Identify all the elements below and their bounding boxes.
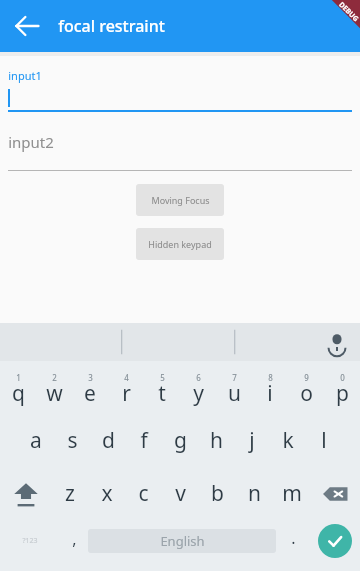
- button[interactable]: Shift: [0, 467, 51, 520]
- staticText: input1: [8, 68, 42, 83]
- staticText: u: [228, 379, 241, 408]
- button[interactable]: z: [51, 467, 88, 520]
- button[interactable]: 9: [288, 366, 324, 414]
- button[interactable]: b: [199, 467, 236, 520]
- button[interactable]: 3: [72, 366, 108, 414]
- staticText: p: [336, 379, 349, 408]
- staticText: 1: [16, 372, 21, 383]
- button[interactable]: 8: [252, 366, 288, 414]
- button[interactable]: Voice input: [323, 328, 351, 356]
- staticText: k: [282, 426, 294, 455]
- staticText: v: [175, 479, 186, 508]
- staticText: n: [248, 479, 261, 508]
- staticText: 2: [52, 372, 57, 383]
- staticText: g: [174, 426, 187, 455]
- button[interactable]: g: [162, 414, 198, 467]
- button[interactable]: 5: [144, 366, 180, 414]
- staticText: ?123: [22, 536, 38, 546]
- button[interactable]: 6: [180, 366, 216, 414]
- button[interactable]: f: [126, 414, 162, 467]
- button[interactable]: h: [198, 414, 234, 467]
- button[interactable]: k: [270, 414, 306, 467]
- staticText: .: [291, 527, 296, 549]
- staticText: 8: [268, 372, 273, 383]
- staticText: d: [102, 426, 115, 455]
- staticText: j: [249, 426, 255, 455]
- button[interactable]: a: [18, 414, 54, 467]
- staticText: 9: [304, 372, 309, 383]
- staticText: input2: [8, 132, 54, 152]
- staticText: w: [46, 379, 63, 408]
- staticText: 4: [124, 372, 129, 383]
- button[interactable]: v: [162, 467, 199, 520]
- button[interactable]: d: [90, 414, 126, 467]
- button[interactable]: Moving Focus: [136, 184, 224, 216]
- staticText: b: [211, 479, 224, 508]
- staticText: 6: [196, 372, 201, 383]
- staticText: 7: [232, 372, 237, 383]
- staticText: 3: [88, 372, 93, 383]
- button[interactable]: Back: [8, 7, 46, 45]
- button[interactable]: l: [306, 414, 342, 467]
- button[interactable]: s: [54, 414, 90, 467]
- staticText: y: [193, 379, 204, 408]
- staticText: DEBUG: [336, 0, 360, 24]
- staticText: a: [30, 426, 42, 455]
- staticText: 5: [160, 372, 165, 383]
- staticText: o: [300, 379, 313, 408]
- staticText: 0: [340, 372, 345, 383]
- staticText: t: [158, 379, 166, 408]
- button[interactable]: 4: [108, 366, 144, 414]
- button[interactable]: ,: [60, 520, 88, 562]
- staticText: Moving Focus: [151, 194, 210, 206]
- button[interactable]: n: [236, 467, 273, 520]
- button[interactable]: English: [88, 529, 276, 553]
- staticText: r: [122, 379, 131, 408]
- staticText: e: [84, 379, 96, 408]
- button[interactable]: m: [273, 467, 310, 520]
- staticText: x: [101, 479, 113, 508]
- staticText: focal restraint: [58, 15, 165, 37]
- staticText: Hidden keypad: [148, 238, 212, 250]
- staticText: l: [321, 426, 327, 455]
- staticText: q: [12, 379, 25, 408]
- staticText: c: [138, 479, 149, 508]
- staticText: z: [65, 479, 75, 508]
- button[interactable]: j: [234, 414, 270, 467]
- staticText: s: [67, 426, 78, 455]
- button[interactable]: c: [125, 467, 162, 520]
- staticText: h: [210, 426, 223, 455]
- staticText: ,: [72, 528, 77, 550]
- staticText: m: [282, 479, 302, 508]
- button[interactable]: Backspace: [310, 467, 360, 520]
- staticText: f: [140, 426, 148, 455]
- button[interactable]: .: [276, 520, 310, 562]
- staticText: English: [160, 532, 205, 550]
- button[interactable]: 7: [216, 366, 252, 414]
- button[interactable]: x: [88, 467, 125, 520]
- button[interactable]: 1: [0, 366, 36, 414]
- button[interactable]: Done: [318, 524, 352, 558]
- button[interactable]: 2: [36, 366, 72, 414]
- button[interactable]: Hidden keypad: [136, 228, 224, 260]
- staticText: i: [267, 379, 273, 408]
- button[interactable]: 0: [324, 366, 360, 414]
